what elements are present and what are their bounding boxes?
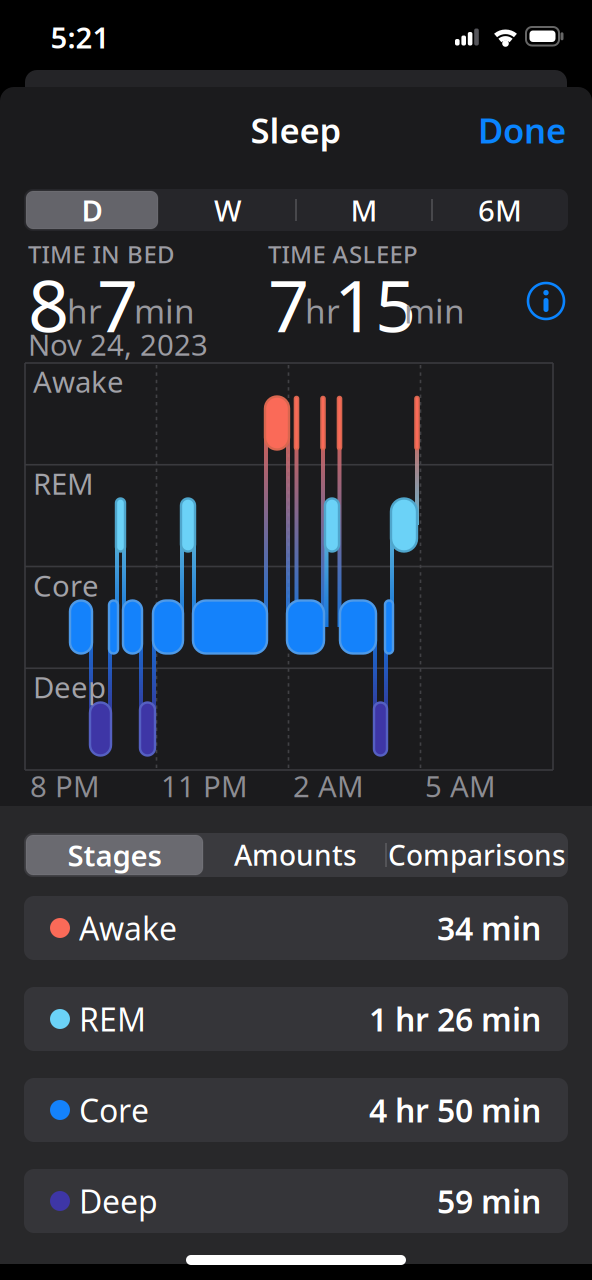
staticText: min: [404, 288, 465, 333]
staticText: Deep: [79, 1180, 158, 1222]
staticText: Comparisons: [388, 836, 566, 874]
staticText: Awake: [33, 362, 124, 401]
button[interactable]: Awake: [24, 896, 568, 960]
button[interactable]: Deep: [24, 1169, 568, 1233]
staticText: 34 min: [437, 907, 541, 949]
staticText: Stages: [67, 835, 161, 874]
staticText: 8: [28, 256, 69, 352]
staticText: 5 AM: [425, 766, 496, 805]
staticText: 1 hr 26 min: [369, 998, 541, 1040]
staticText: 2 AM: [293, 766, 364, 805]
staticText: Awake: [79, 907, 177, 949]
staticText: Deep: [33, 667, 106, 706]
staticText: 11 PM: [161, 766, 248, 805]
staticText: hr: [305, 288, 340, 333]
staticText: REM: [33, 464, 94, 503]
staticText: 8 PM: [30, 766, 100, 805]
staticText: min: [134, 288, 195, 333]
staticText: TIME ASLEEP: [268, 238, 418, 270]
button[interactable]: Core: [24, 1078, 568, 1142]
button[interactable]: Comparisons: [386, 833, 568, 877]
staticText: Amounts: [234, 836, 357, 874]
staticText: 7: [268, 256, 309, 352]
staticText: TIME IN BED: [28, 238, 175, 270]
button[interactable]: D: [24, 189, 160, 231]
staticText: 4 hr 50 min: [369, 1089, 541, 1131]
staticText: Core: [79, 1089, 149, 1131]
staticText: Done: [478, 107, 566, 153]
button[interactable]: Stages: [24, 833, 205, 877]
staticText: 7: [97, 256, 138, 352]
staticText: 6M: [478, 190, 522, 229]
staticText: M: [350, 190, 377, 229]
button[interactable]: Done: [426, 108, 566, 152]
button[interactable]: M: [296, 189, 432, 231]
button[interactable]: [524, 279, 564, 319]
staticText: D: [81, 190, 102, 229]
staticText: 15: [334, 256, 416, 352]
button[interactable]: 6M: [432, 189, 568, 231]
button[interactable]: Amounts: [205, 833, 386, 877]
staticText: hr: [67, 288, 102, 333]
staticText: REM: [79, 998, 146, 1040]
staticText: Core: [33, 566, 99, 605]
staticText: Nov 24, 2023: [28, 325, 208, 364]
button[interactable]: W: [160, 189, 296, 231]
staticText: Sleep: [250, 107, 341, 153]
staticText: W: [214, 190, 242, 229]
button[interactable]: REM: [24, 987, 568, 1051]
staticText: 59 min: [437, 1180, 541, 1222]
staticText: 5:21: [50, 17, 109, 56]
